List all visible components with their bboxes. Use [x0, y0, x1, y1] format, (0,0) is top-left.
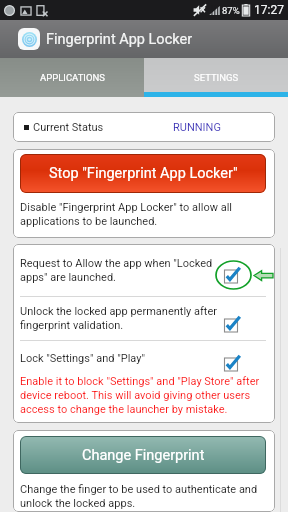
button[interactable]: APPLICATIONS	[0, 58, 144, 97]
button[interactable]: Stop "Fingerprint App Locker"	[20, 154, 266, 193]
staticText: Request to Allow the app when "Locked ap…	[20, 257, 218, 284]
staticText: 17:27	[254, 3, 284, 17]
staticText: Change the finger to be used to authenti…	[20, 483, 266, 510]
staticText: Change Fingerprint	[82, 447, 205, 464]
button[interactable]: Lock "Settings" and "Play"	[13, 341, 275, 375]
staticText: 87%	[222, 5, 240, 16]
staticText: Unlock the locked app permanently after …	[20, 305, 218, 332]
staticText: Disable "Fingerprint App Locker" to allo…	[20, 201, 266, 228]
staticText: Lock "Settings" and "Play"	[20, 352, 218, 365]
staticText: SETTINGS	[194, 72, 239, 83]
staticText: APPLICATIONS	[40, 72, 105, 83]
button[interactable]: Request to Allow the app when "Locked ap…	[13, 244, 275, 296]
staticText: Current Status	[33, 121, 104, 134]
button[interactable]: Unlock the locked app permanently after …	[13, 297, 275, 340]
staticText: Enable it to block "Settings" and "Play …	[20, 375, 266, 416]
staticText: RUNNING	[173, 121, 221, 134]
button[interactable]: SETTINGS	[144, 58, 288, 97]
staticText: Stop "Fingerprint App Locker"	[49, 165, 238, 182]
button[interactable]: Change Fingerprint	[20, 436, 266, 474]
staticText: Fingerprint App Locker	[46, 31, 193, 48]
